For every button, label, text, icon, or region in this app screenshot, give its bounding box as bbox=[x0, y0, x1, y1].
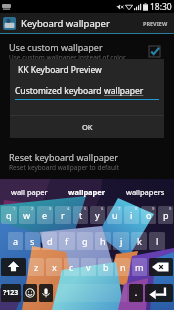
button[interactable]: Backspace bbox=[149, 258, 173, 276]
button[interactable]: Enter bbox=[145, 284, 173, 302]
staticText: 3 bbox=[49, 206, 52, 211]
staticText: b bbox=[103, 261, 109, 273]
button[interactable]: r bbox=[55, 206, 71, 224]
button[interactable]: m bbox=[132, 258, 147, 276]
staticText: ?123 bbox=[3, 288, 19, 298]
staticText: n bbox=[120, 261, 126, 273]
button[interactable]: Emoji bbox=[23, 284, 37, 302]
button[interactable]: Use custom wallpaper bbox=[0, 39, 174, 64]
button[interactable]: Space bbox=[55, 284, 127, 302]
staticText: wallpaper bbox=[68, 187, 106, 197]
button[interactable]: l bbox=[149, 232, 165, 250]
staticText: 18:30 bbox=[150, 1, 172, 13]
button[interactable]: q bbox=[1, 206, 17, 224]
staticText: 5 bbox=[84, 206, 87, 211]
button[interactable]: c bbox=[64, 258, 79, 276]
button[interactable]: j bbox=[113, 232, 129, 250]
button[interactable]: o bbox=[141, 206, 156, 224]
staticText: q bbox=[6, 209, 12, 221]
staticText: v bbox=[86, 261, 91, 273]
staticText: wallpapers bbox=[126, 187, 165, 197]
staticText: y bbox=[95, 209, 100, 221]
staticText: a bbox=[13, 235, 19, 247]
button[interactable]: Shift bbox=[1, 258, 26, 276]
staticText: 6 bbox=[101, 206, 104, 211]
staticText: 0 bbox=[169, 206, 172, 211]
staticText: wall paper bbox=[11, 187, 48, 197]
staticText: 9 bbox=[152, 206, 155, 211]
button[interactable]: e bbox=[37, 206, 53, 224]
staticText: wallpaper bbox=[104, 85, 144, 97]
staticText: x bbox=[52, 261, 57, 273]
staticText: 8 bbox=[135, 206, 138, 211]
button[interactable]: t bbox=[73, 206, 88, 224]
button[interactable]: i bbox=[124, 206, 139, 224]
staticText: h bbox=[100, 235, 106, 247]
staticText: m bbox=[135, 261, 144, 273]
button[interactable]: h bbox=[95, 232, 111, 250]
staticText: Reset keyboard wallpaper to default bbox=[9, 163, 120, 172]
staticText: t bbox=[79, 209, 83, 221]
staticText: 7 bbox=[118, 206, 121, 211]
button[interactable]: x bbox=[46, 258, 62, 276]
staticText: c bbox=[69, 261, 74, 273]
staticText: s bbox=[30, 235, 35, 247]
button[interactable]: k bbox=[131, 232, 147, 250]
staticText: f bbox=[65, 235, 69, 247]
staticText: k bbox=[137, 235, 142, 247]
staticText: r bbox=[61, 209, 65, 221]
staticText: i bbox=[130, 209, 133, 221]
staticText: j bbox=[120, 235, 123, 247]
button[interactable]: wallpaper bbox=[58, 179, 116, 205]
staticText: 1 bbox=[13, 206, 16, 211]
staticText: z bbox=[34, 261, 39, 273]
button[interactable]: p bbox=[158, 206, 173, 224]
button[interactable]: a bbox=[8, 232, 23, 250]
button[interactable]: Reset keyboard wallpaper bbox=[0, 149, 174, 174]
staticText: Reset keyboard wallpaper bbox=[9, 151, 119, 163]
button[interactable]: OK bbox=[10, 116, 164, 138]
button[interactable]: d bbox=[42, 232, 57, 250]
button[interactable]: PREVIEW bbox=[137, 13, 174, 33]
button[interactable]: Voice input bbox=[39, 284, 53, 302]
button[interactable]: Use custom wallpaper bbox=[149, 46, 160, 57]
button[interactable]: g bbox=[77, 232, 93, 250]
staticText: Use custom wallpaper instead of color bbox=[9, 53, 126, 62]
staticText: Keyboard wallpaper bbox=[21, 17, 110, 30]
button[interactable]: wallpapers bbox=[116, 179, 174, 205]
button[interactable]: u bbox=[107, 206, 122, 224]
staticText: KK Keyboard Preview bbox=[18, 64, 102, 76]
button[interactable]: Period bbox=[129, 284, 143, 302]
staticText: o bbox=[146, 209, 152, 221]
staticText: d bbox=[47, 235, 53, 247]
staticText: PREVIEW bbox=[143, 20, 168, 27]
button[interactable]: z bbox=[28, 258, 44, 276]
button[interactable]: v bbox=[81, 258, 96, 276]
button[interactable]: b bbox=[98, 258, 113, 276]
button[interactable]: f bbox=[59, 232, 75, 250]
staticText: e bbox=[42, 209, 48, 221]
staticText: Customized keyboard bbox=[15, 85, 104, 97]
button[interactable]: wall paper bbox=[0, 179, 58, 205]
staticText: 4 bbox=[67, 206, 70, 211]
staticText: g bbox=[82, 235, 88, 247]
staticText: w bbox=[23, 209, 31, 221]
staticText: OK bbox=[82, 122, 93, 132]
button[interactable]: s bbox=[25, 232, 40, 250]
button[interactable]: w bbox=[19, 206, 35, 224]
button[interactable]: n bbox=[115, 258, 130, 276]
staticText: u bbox=[112, 209, 118, 221]
button[interactable]: y bbox=[90, 206, 105, 224]
staticText: l bbox=[156, 235, 159, 247]
staticText: 2 bbox=[31, 206, 34, 211]
staticText: Use custom wallpaper bbox=[9, 41, 103, 53]
button[interactable]: ?123 bbox=[1, 284, 21, 302]
staticText: p bbox=[163, 209, 169, 221]
